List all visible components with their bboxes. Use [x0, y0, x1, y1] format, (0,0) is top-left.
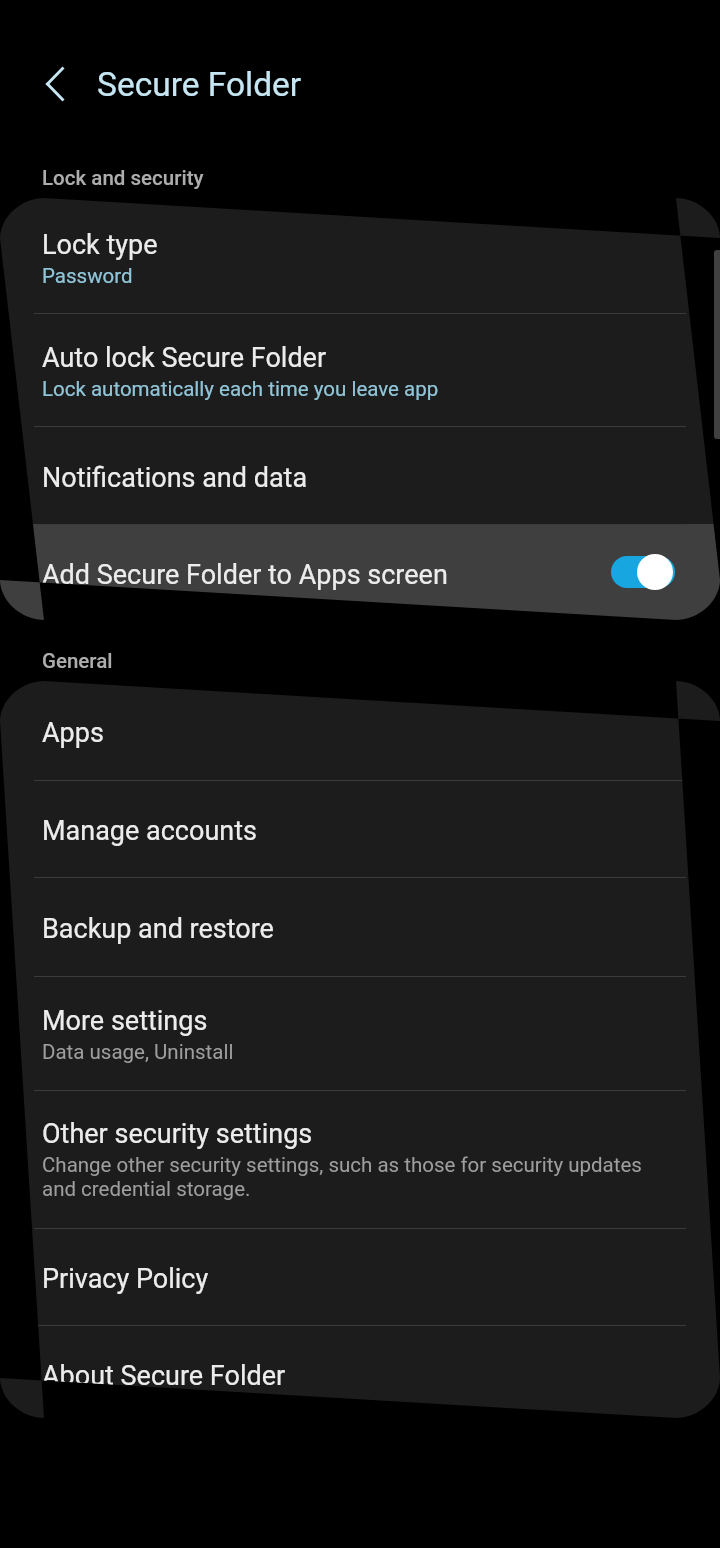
- button[interactable]: Apps: [0, 681, 720, 780]
- button[interactable]: Backup and restore: [0, 877, 720, 976]
- staticText: Secure Folder: [97, 65, 302, 104]
- button[interactable]: Privacy Policy: [0, 1228, 720, 1325]
- staticText: More settings: [42, 1005, 208, 1037]
- button[interactable]: Add Secure Folder to Apps screen: [0, 524, 720, 620]
- staticText: Lock automatically each time you leave a…: [42, 377, 439, 401]
- button[interactable]: About Secure Folder: [0, 1325, 720, 1418]
- staticText: Backup and restore: [42, 913, 274, 945]
- staticText: About Secure Folder: [42, 1360, 286, 1392]
- staticText: Password: [42, 264, 133, 288]
- staticText: Other security settings: [42, 1118, 313, 1150]
- staticText: Change other security settings, such as …: [42, 1153, 680, 1201]
- button[interactable]: Add Secure Folder to Apps screen toggle: [610, 553, 676, 591]
- staticText: Lock and security: [42, 166, 204, 190]
- button[interactable]: More settings: [0, 976, 720, 1090]
- button[interactable]: Other security settings: [0, 1090, 720, 1228]
- button[interactable]: Navigate up: [30, 59, 80, 109]
- staticText: Lock type: [42, 229, 158, 261]
- button[interactable]: Manage accounts: [0, 780, 720, 877]
- staticText: General: [42, 649, 113, 673]
- button[interactable]: Lock type: [0, 198, 720, 313]
- staticText: Auto lock Secure Folder: [42, 342, 327, 374]
- staticText: Add Secure Folder to Apps screen: [42, 559, 448, 591]
- staticText: Apps: [42, 717, 104, 749]
- staticText: Notifications and data: [42, 462, 308, 494]
- button[interactable]: Auto lock Secure Folder: [0, 313, 720, 426]
- button[interactable]: Notifications and data: [0, 426, 720, 524]
- staticText: Manage accounts: [42, 815, 257, 847]
- staticText: Data usage, Uninstall: [42, 1040, 234, 1064]
- staticText: Privacy Policy: [42, 1263, 209, 1295]
